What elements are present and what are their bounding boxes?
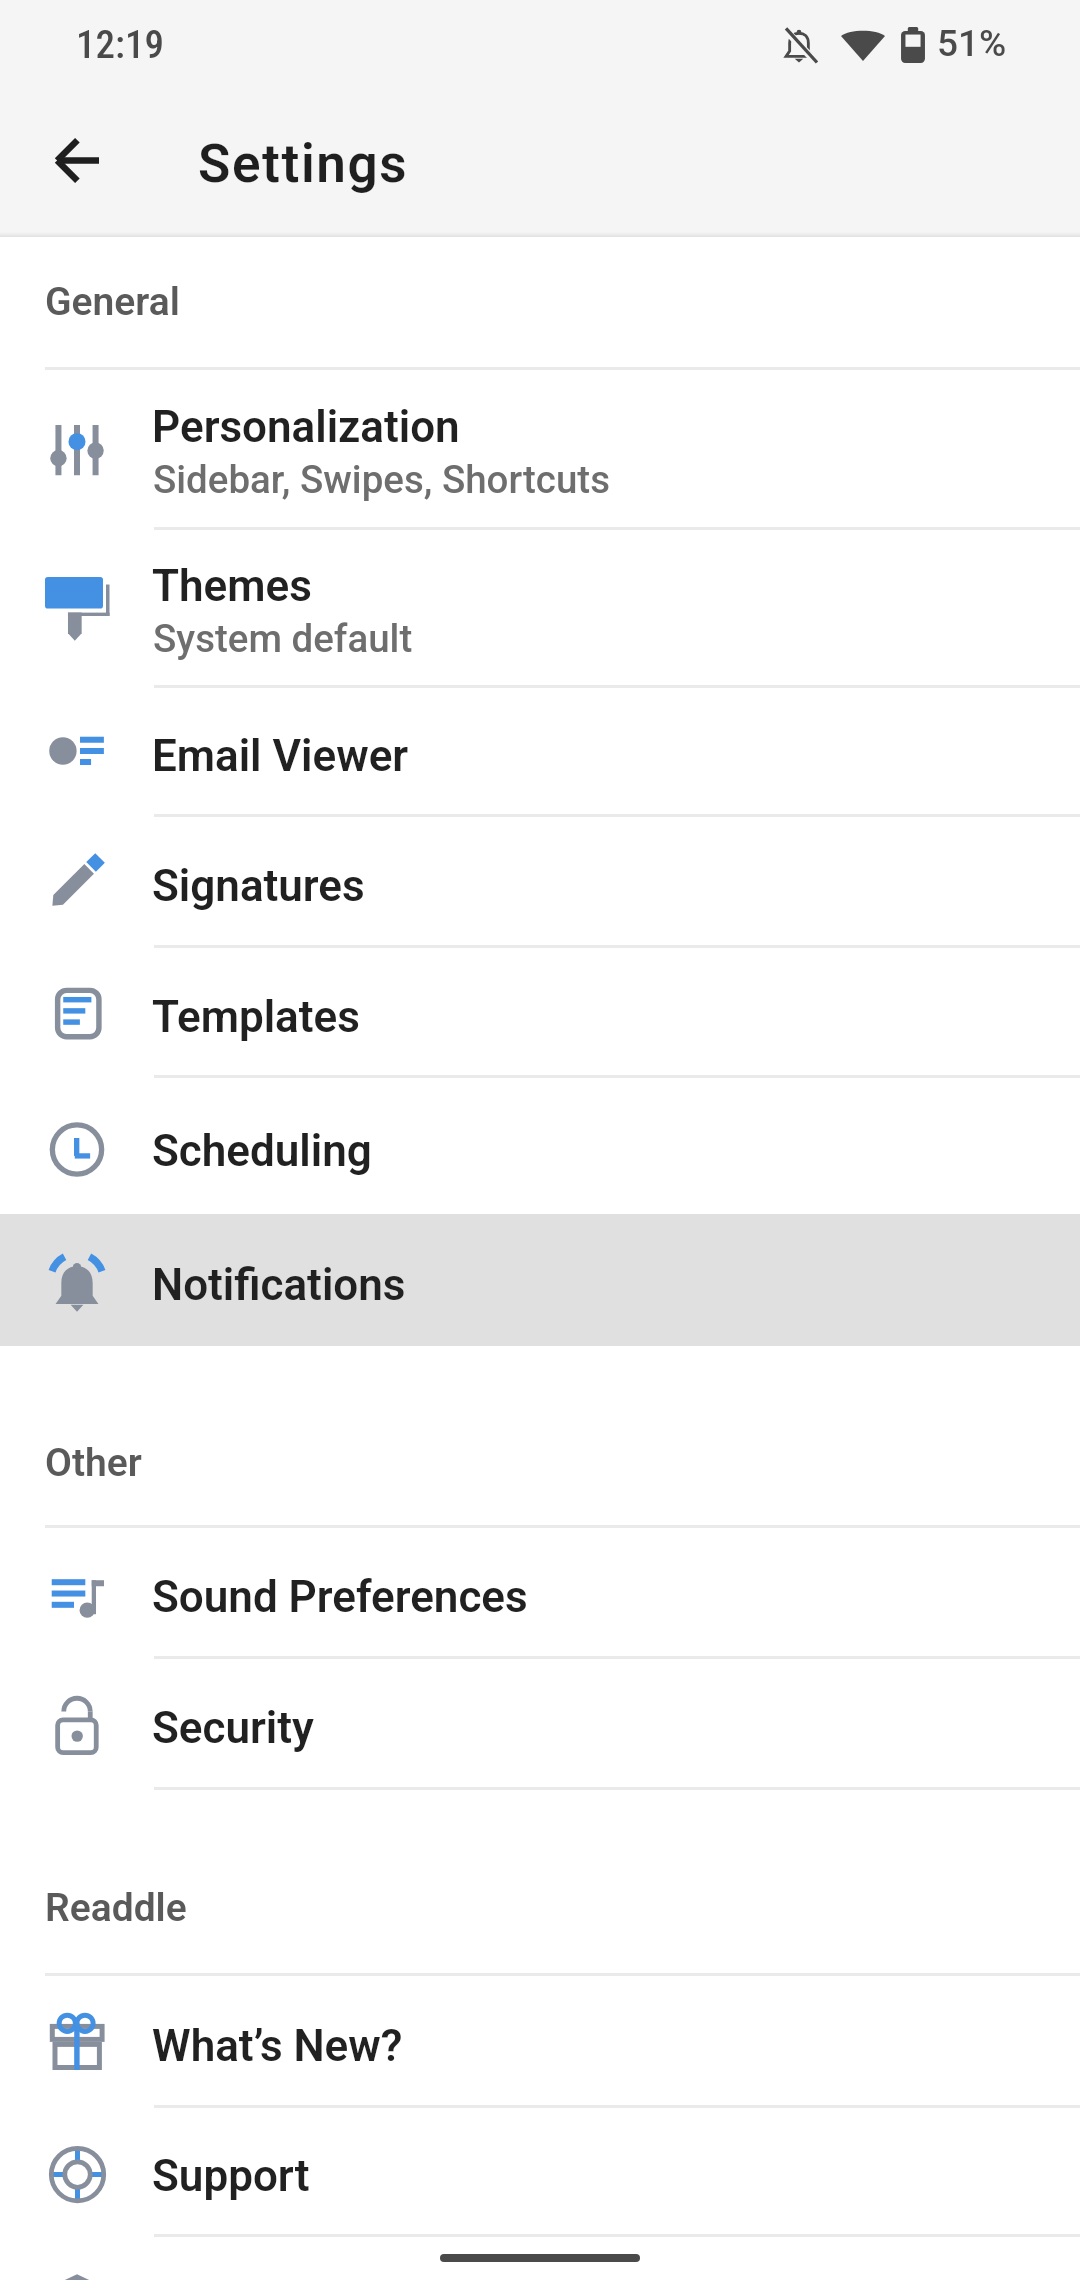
staticText: 51%: [937, 22, 1007, 65]
button[interactable]: Personalization: [0, 370, 1080, 527]
staticText: 12:19: [76, 22, 164, 68]
staticText: Personalization: [152, 401, 460, 453]
staticText: Settings: [198, 133, 409, 195]
button[interactable]: Sound Preferences: [0, 1528, 1080, 1656]
button[interactable]: Signatures: [0, 817, 1080, 945]
staticText: Other: [45, 1440, 142, 1486]
staticText: General: [45, 279, 180, 325]
button[interactable]: Back: [22, 106, 130, 214]
button[interactable]: Support: [0, 2108, 1080, 2234]
button[interactable]: Notifications: [0, 1214, 1080, 1346]
button[interactable]: Email Viewer: [0, 688, 1080, 814]
staticText: System default: [153, 616, 413, 661]
staticText: Readdle: [45, 1885, 187, 1931]
staticText: Sidebar, Swipes, Shortcuts: [153, 457, 610, 502]
button[interactable]: What’s New?: [0, 1976, 1080, 2105]
button[interactable]: Security: [0, 1659, 1080, 1787]
staticText: What’s New?: [152, 2020, 403, 2072]
button[interactable]: Scheduling: [0, 1078, 1080, 1214]
staticText: Themes: [152, 560, 312, 612]
staticText: Notifications: [152, 1259, 406, 1311]
button[interactable]: Templates: [0, 948, 1080, 1075]
button[interactable]: Privacy: [0, 2271, 1080, 2280]
staticText: Signatures: [152, 860, 365, 912]
staticText: Support: [152, 2150, 310, 2202]
staticText: Email Viewer: [152, 730, 409, 782]
button[interactable]: Themes: [0, 530, 1080, 685]
staticText: Sound Preferences: [152, 1571, 528, 1623]
staticText: Scheduling: [152, 1125, 372, 1177]
staticText: Security: [152, 1702, 314, 1754]
staticText: Templates: [152, 991, 360, 1043]
